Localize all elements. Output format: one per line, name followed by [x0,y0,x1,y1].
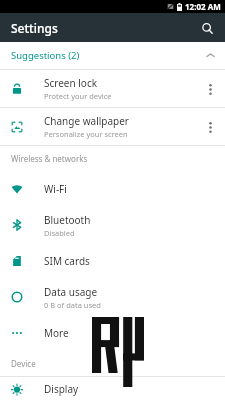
staticText: Bluetooth [44,213,91,227]
staticText: More [44,326,69,340]
button[interactable]: Data usage [0,279,225,315]
staticText: Change wallpaper [44,114,129,128]
button[interactable]: More options [201,74,219,104]
staticText: Wireless & networks [11,153,88,164]
staticText: 12:02 AM [185,1,221,12]
button[interactable]: More [0,315,225,351]
staticText: Device [11,358,36,369]
button[interactable]: Bluetooth [0,207,225,243]
staticText: 0 B of data used [44,300,101,310]
staticText: Protect your device [44,91,112,101]
staticText: Settings [11,20,58,36]
button[interactable]: More options [201,112,219,142]
staticText: Suggestions (2) [11,49,80,62]
staticText: SIM cards [44,254,90,268]
button[interactable]: Wi-Fi [0,171,225,207]
staticText: Screen lock [44,76,98,90]
button[interactable]: SIM cards [0,243,225,279]
button[interactable]: Display [0,377,225,400]
button[interactable]: Suggestions (2) [0,42,225,69]
staticText: Disabled [44,228,75,238]
staticText: Data usage [44,285,98,299]
staticText: Personalize your screen [44,129,128,139]
button[interactable]: Screen lock [0,70,225,107]
staticText: Display [44,382,79,396]
staticText: Wi-Fi [44,182,67,196]
button[interactable]: Search [197,18,217,38]
button[interactable]: Change wallpaper [0,108,225,145]
